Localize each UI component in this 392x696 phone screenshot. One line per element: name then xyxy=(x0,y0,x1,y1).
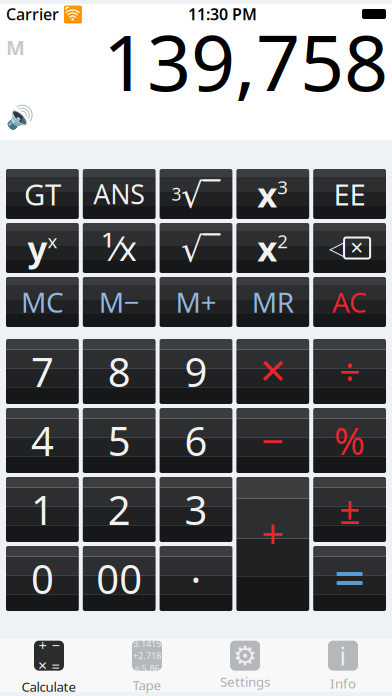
staticText: ✕ xyxy=(37,659,47,673)
staticText: 139,758 xyxy=(103,10,388,112)
button[interactable]: MR xyxy=(236,277,309,327)
staticText: · xyxy=(190,552,201,605)
button[interactable]: 3.1415 xyxy=(98,640,196,690)
button[interactable]: Sound xyxy=(6,104,34,130)
button[interactable]: x xyxy=(236,169,309,219)
button[interactable]: 9 xyxy=(160,339,232,404)
staticText: Carrier 🛜 xyxy=(6,3,83,25)
button[interactable]: · xyxy=(160,546,232,611)
staticText: ◁ xyxy=(329,237,344,259)
staticText: 0 xyxy=(31,552,54,605)
button[interactable]: GT xyxy=(6,169,79,219)
staticText: x xyxy=(47,229,57,253)
staticText: = xyxy=(51,656,59,676)
staticText: y xyxy=(27,225,47,271)
staticText: + xyxy=(261,506,284,559)
staticText: √‾ xyxy=(181,225,220,271)
staticText: + xyxy=(38,636,46,655)
staticText: ⚙ xyxy=(233,640,257,671)
staticText: 2 xyxy=(277,229,288,253)
button[interactable]: AC xyxy=(313,277,386,327)
button[interactable]: M− xyxy=(83,277,156,327)
staticText: M+ xyxy=(175,283,216,321)
staticText: 8 xyxy=(108,345,131,398)
staticText: 3 xyxy=(277,175,288,199)
staticText: ✕ xyxy=(258,352,287,391)
staticText: 2 xyxy=(108,483,131,536)
staticText: Settings xyxy=(220,673,270,690)
staticText: AC xyxy=(332,283,367,321)
staticText: M xyxy=(6,34,25,61)
button[interactable]: 7 xyxy=(6,339,79,404)
button[interactable]: Delete xyxy=(313,223,386,273)
staticText: EE xyxy=(334,174,366,213)
button[interactable]: 3 xyxy=(160,477,232,542)
staticText: 6 xyxy=(184,414,207,467)
button[interactable]: + xyxy=(0,640,98,690)
button[interactable]: ⚙ xyxy=(196,640,294,690)
button[interactable]: MC xyxy=(6,277,79,327)
button[interactable]: ANS xyxy=(83,169,156,219)
staticText: % xyxy=(334,416,365,465)
staticText: 9 xyxy=(184,345,207,398)
staticText: 🔊 xyxy=(6,104,34,130)
staticText: 1 xyxy=(31,483,54,536)
staticText: = 5.86 xyxy=(134,662,159,674)
staticText: ÷ xyxy=(339,347,360,396)
button[interactable]: Square root xyxy=(160,223,232,273)
button[interactable]: 8 xyxy=(83,339,156,404)
staticText: M− xyxy=(99,283,140,321)
staticText: GT xyxy=(24,174,61,213)
staticText: ANS xyxy=(93,176,145,212)
staticText: +2.718 xyxy=(133,649,161,662)
button[interactable]: x xyxy=(236,223,309,273)
staticText: 7 xyxy=(31,345,54,398)
staticText: − xyxy=(261,414,284,467)
staticText: ± xyxy=(339,485,360,534)
staticText: MC xyxy=(21,283,64,321)
button[interactable]: y xyxy=(6,223,79,273)
button[interactable]: Equals xyxy=(313,546,386,611)
button[interactable]: i xyxy=(294,640,392,690)
staticText: √‾ xyxy=(181,171,220,217)
staticText: 00 xyxy=(96,552,142,605)
button[interactable]: 1 xyxy=(6,477,79,542)
staticText: Info xyxy=(330,674,356,692)
button[interactable]: % xyxy=(313,408,386,473)
staticText: 3 xyxy=(184,483,207,536)
staticText: ¹⁄x xyxy=(102,225,137,271)
staticText: 5 xyxy=(108,414,131,467)
button[interactable]: ¹⁄x xyxy=(83,223,156,273)
staticText: − xyxy=(51,636,59,655)
staticText: Calculate xyxy=(21,678,76,695)
staticText: i xyxy=(339,639,346,672)
button[interactable]: 00 xyxy=(83,546,156,611)
button[interactable]: 2 xyxy=(83,477,156,542)
button[interactable]: 5 xyxy=(83,408,156,473)
button[interactable]: EE xyxy=(313,169,386,219)
staticText: x xyxy=(257,171,277,217)
button[interactable]: ÷ xyxy=(313,339,386,404)
staticText: x xyxy=(257,225,277,271)
button[interactable]: 4 xyxy=(6,408,79,473)
button[interactable]: Plus xyxy=(236,477,309,611)
button[interactable]: M+ xyxy=(160,277,232,327)
staticText: Tape xyxy=(132,676,161,694)
staticText: ✕ xyxy=(350,238,365,258)
button[interactable]: ± xyxy=(313,477,386,542)
staticText: MR xyxy=(252,283,294,321)
button[interactable]: 6 xyxy=(160,408,232,473)
staticText: 3 xyxy=(171,182,181,205)
staticText: 4 xyxy=(31,414,54,467)
button[interactable]: 0 xyxy=(6,546,79,611)
staticText: 11:30 PM xyxy=(188,3,257,25)
button[interactable]: Cube root xyxy=(160,169,232,219)
button[interactable]: ✕ xyxy=(236,339,309,404)
staticText: 3.1415 xyxy=(133,637,161,649)
button[interactable]: − xyxy=(236,408,309,473)
